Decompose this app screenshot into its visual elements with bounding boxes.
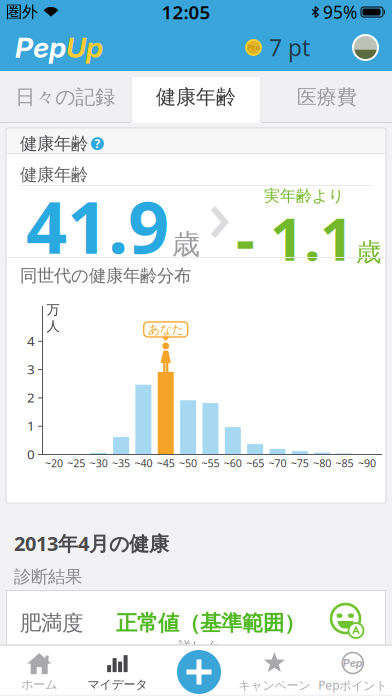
staticText: 健康年齢 <box>20 164 88 185</box>
staticText: 圏外 <box>6 2 38 22</box>
button[interactable]: ホーム <box>0 647 78 696</box>
staticText: 0 <box>27 445 35 463</box>
staticText: 正常値（基準範囲） <box>116 610 305 636</box>
staticText: 万 <box>46 302 59 318</box>
staticText: ~60 <box>224 456 242 470</box>
staticText: ~70 <box>268 456 286 470</box>
staticText: ~20 <box>45 456 63 470</box>
staticText: 1 <box>27 417 35 434</box>
button[interactable]: 健康年齢 41.9歳 実年齢より-1.1歳 <box>6 155 386 257</box>
staticText: ~85 <box>336 456 354 470</box>
button[interactable]: 日々の記録 <box>0 71 130 123</box>
staticText: 95% <box>323 0 357 23</box>
staticText: ~65 <box>246 456 264 470</box>
staticText: 12:05 <box>161 0 210 24</box>
button[interactable]: Pepポイント 7 pt <box>245 32 310 62</box>
staticText: 4 <box>27 332 35 350</box>
button[interactable]: 医療費 <box>261 71 392 123</box>
staticText: ~80 <box>313 456 331 470</box>
staticText: Pep <box>247 43 259 52</box>
staticText: ~25 <box>67 456 85 470</box>
staticText: 3 <box>27 360 35 378</box>
staticText: 2 <box>27 388 35 406</box>
staticText: Up <box>66 31 103 64</box>
staticText: マイデータ <box>88 677 148 692</box>
button[interactable]: 記録を追加 <box>177 650 221 694</box>
button[interactable]: 健康年齢 <box>130 71 261 123</box>
staticText: 41.9 <box>26 178 169 274</box>
staticText: 健康年齢 <box>20 133 88 154</box>
button[interactable]: 健康年齢とは <box>91 136 104 152</box>
staticText: ? <box>94 136 100 152</box>
button[interactable]: 肥満度 正常値 <box>6 590 386 646</box>
staticText: 健康年齢 <box>156 85 236 109</box>
staticText: キャンペーン <box>238 678 310 693</box>
staticText: Pep <box>343 656 363 669</box>
staticText: ~90 <box>358 456 376 470</box>
staticText: - 1.1 <box>236 199 354 277</box>
staticText: Pep <box>15 31 66 64</box>
staticText: ~75 <box>291 456 309 470</box>
staticText: あなた <box>148 322 184 337</box>
staticText: 日々の記録 <box>15 85 115 109</box>
staticText: 人 <box>46 318 59 334</box>
staticText: 診断結果 <box>14 566 82 587</box>
staticText: 医療費 <box>297 85 357 109</box>
staticText: ホーム <box>21 677 57 692</box>
staticText: Pepポイント <box>318 677 387 693</box>
button[interactable]: プロフィール <box>352 34 379 61</box>
staticText: 歳 <box>172 227 200 262</box>
staticText: ~30 <box>90 456 108 470</box>
button[interactable]: Pepポイント <box>314 647 392 696</box>
button[interactable]: マイデータ <box>78 647 157 696</box>
staticText: ~40 <box>134 456 152 470</box>
staticText: 詳しく <box>178 638 219 654</box>
button[interactable]: キャンペーン <box>235 647 314 696</box>
staticText: 肥満度 <box>20 610 83 636</box>
staticText: 2013年4月の健康 <box>14 530 169 557</box>
staticText: ~45 <box>157 456 175 470</box>
staticText: ~50 <box>179 456 197 470</box>
staticText: 歳 <box>356 237 381 268</box>
staticText: ~35 <box>112 456 130 470</box>
staticText: ~55 <box>201 456 219 470</box>
staticText: 7 pt <box>269 32 310 62</box>
staticText: 実年齢より <box>264 186 344 206</box>
staticText: 同世代の健康年齢分布 <box>20 265 191 286</box>
